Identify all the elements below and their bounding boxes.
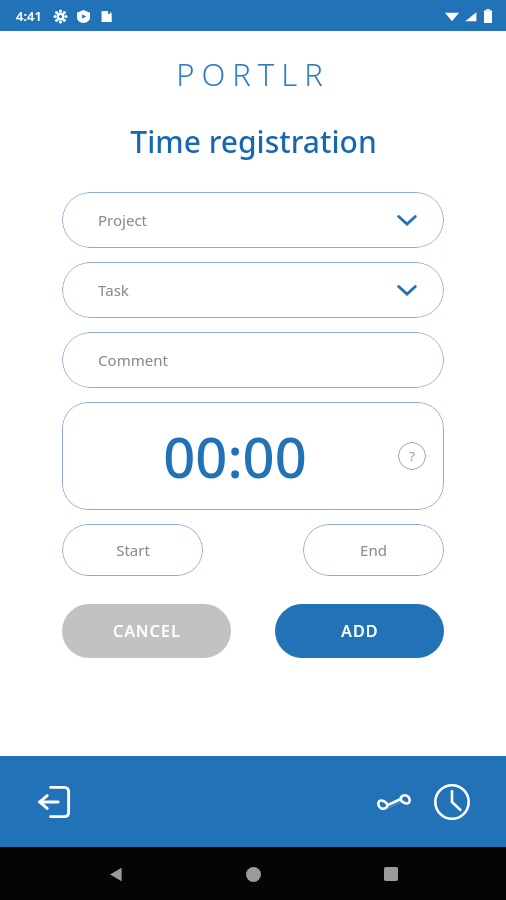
staticText: 4:41 — [16, 7, 42, 25]
staticText: Time registration — [130, 121, 377, 162]
staticText: ? — [409, 447, 415, 465]
button[interactable]: Call — [370, 778, 418, 826]
staticText: CANCEL — [113, 620, 181, 642]
staticText: PORTLR — [176, 53, 330, 95]
button[interactable]: Comment — [62, 332, 444, 388]
button[interactable]: Time registration — [428, 778, 476, 826]
button[interactable]: Log out — [30, 778, 78, 826]
staticText: Start — [116, 540, 150, 560]
staticText: Comment — [98, 350, 168, 370]
button[interactable]: Task — [62, 262, 444, 318]
staticText: ADD — [341, 620, 379, 642]
button[interactable]: Start — [62, 524, 203, 576]
staticText: Project — [98, 210, 147, 230]
staticText: Task — [98, 280, 129, 300]
button[interactable]: Recent apps — [369, 852, 413, 896]
button[interactable]: Help — [398, 442, 426, 470]
button[interactable]: Home — [231, 852, 275, 896]
button[interactable]: ADD — [275, 604, 444, 658]
button[interactable]: Back — [94, 852, 138, 896]
staticText: 00:00 — [163, 418, 307, 494]
button[interactable]: CANCEL — [62, 604, 231, 658]
staticText: End — [360, 540, 387, 560]
button[interactable]: End — [303, 524, 444, 576]
button[interactable]: 00:00 — [62, 402, 444, 510]
button[interactable]: Project — [62, 192, 444, 248]
